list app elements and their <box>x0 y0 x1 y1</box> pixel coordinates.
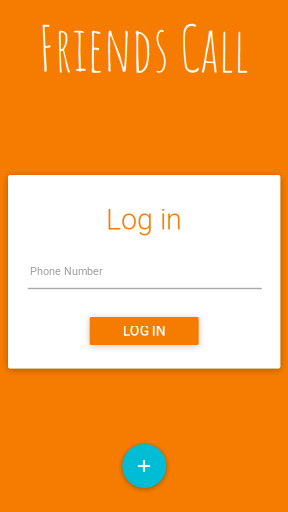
staticText: LOG IN <box>123 323 166 339</box>
staticText: Phone Number <box>30 265 103 278</box>
button[interactable]: Phone Number <box>28 260 262 292</box>
staticText: Friends Call <box>38 9 248 87</box>
button[interactable]: LOG IN <box>90 317 199 345</box>
staticText: Log in <box>106 203 182 237</box>
button[interactable]: Add <box>122 444 166 488</box>
